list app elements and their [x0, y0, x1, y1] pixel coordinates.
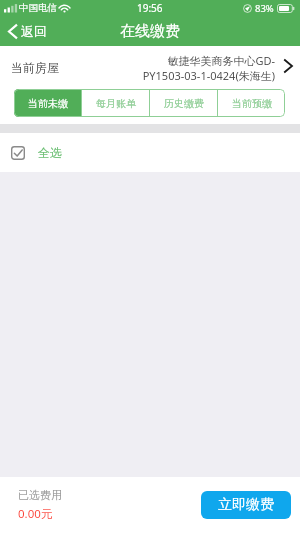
staticText: 返回 [21, 23, 47, 39]
staticText: 当前未缴 [28, 97, 68, 110]
button[interactable]: 全选 [0, 133, 300, 172]
staticText: 19:56 [137, 1, 163, 15]
staticText: 在线缴费 [120, 22, 180, 41]
button[interactable]: 历史缴费 [150, 89, 217, 117]
staticText: 已选费用 [18, 488, 62, 502]
button[interactable]: 每月账单 [82, 89, 149, 117]
staticText: 当前房屋 [11, 60, 59, 75]
staticText: 敏捷华美商务中心GD- [167, 53, 275, 68]
button[interactable]: 当前未缴 [14, 89, 81, 117]
staticText: 立即缴费 [218, 496, 274, 514]
staticText: 全选 [38, 145, 62, 160]
staticText: PY1503-03-1-0424(朱海生) [142, 68, 275, 83]
staticText: 历史缴费 [164, 97, 204, 110]
staticText: 每月账单 [96, 97, 136, 110]
button[interactable]: 立即缴费 [201, 491, 291, 519]
staticText: 0.00元 [18, 506, 53, 522]
button[interactable]: 当前预缴 [218, 89, 285, 117]
staticText: 当前预缴 [232, 97, 272, 110]
button[interactable]: 返回 [0, 16, 55, 46]
staticText: 83% [255, 2, 274, 15]
staticText: 中国电信 [19, 2, 57, 14]
button[interactable]: 当前房屋 [0, 46, 300, 89]
